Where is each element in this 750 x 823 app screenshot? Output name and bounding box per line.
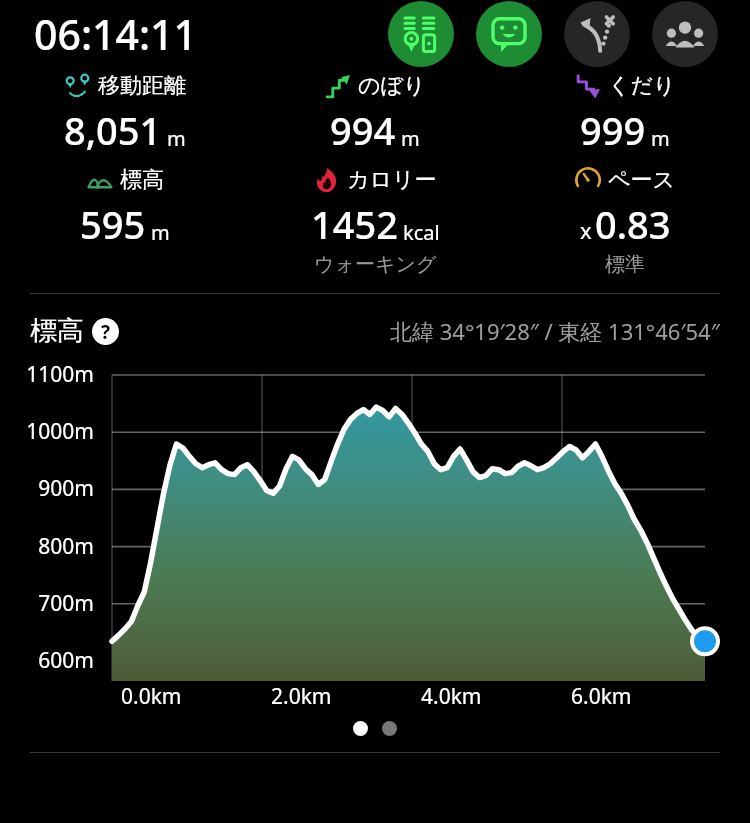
- staticText: 北緯 34°19′28″ / 東経 131°46′54″: [390, 316, 720, 346]
- staticText: 800m: [0, 532, 94, 561]
- button[interactable]: のぼり: [250, 72, 500, 156]
- staticText: 6.0km: [571, 682, 632, 711]
- button[interactable]: [382, 721, 397, 736]
- staticText: 1100m: [0, 360, 94, 389]
- staticText: 標高: [30, 314, 84, 348]
- staticText: m: [167, 125, 186, 152]
- button[interactable]: カロリー: [250, 166, 500, 277]
- staticText: 999: [580, 104, 646, 156]
- button[interactable]: 移動距離: [0, 72, 250, 156]
- staticText: 1452: [311, 198, 398, 250]
- staticText: 移動距離: [98, 72, 186, 100]
- staticText: 06:14:11: [34, 6, 198, 62]
- staticText: 標準: [605, 252, 645, 277]
- staticText: m: [151, 219, 170, 246]
- staticText: kcal: [403, 219, 440, 246]
- button[interactable]: 標高: [0, 166, 250, 250]
- button[interactable]: Members: [652, 1, 718, 67]
- staticText: くだり: [608, 72, 676, 100]
- staticText: 1000m: [0, 417, 94, 446]
- staticText: ペース: [608, 166, 676, 194]
- button[interactable]: Messages: [476, 1, 542, 67]
- staticText: 4.0km: [421, 682, 482, 711]
- staticText: 8,051: [64, 104, 162, 156]
- staticText: 2.0km: [271, 682, 332, 711]
- staticText: m: [401, 125, 420, 152]
- button[interactable]: ペース: [500, 166, 750, 277]
- staticText: x: [580, 215, 592, 245]
- staticText: 0.0km: [121, 682, 182, 711]
- staticText: 595: [80, 198, 146, 250]
- button[interactable]: Map layers: [388, 1, 454, 67]
- staticText: ?: [101, 319, 111, 345]
- staticText: 994: [330, 104, 396, 156]
- staticText: m: [651, 125, 670, 152]
- staticText: カロリー: [347, 166, 437, 194]
- button[interactable]: [353, 721, 368, 736]
- button[interactable]: Route: [564, 1, 630, 67]
- button[interactable]: くだり: [500, 72, 750, 156]
- staticText: 600m: [0, 646, 94, 675]
- staticText: ウォーキング: [314, 252, 437, 277]
- button[interactable]: Help: [92, 318, 119, 345]
- staticText: 標高: [120, 166, 164, 194]
- staticText: 700m: [0, 589, 94, 618]
- staticText: のぼり: [358, 72, 426, 100]
- staticText: 0.83: [595, 198, 671, 250]
- staticText: 900m: [0, 474, 94, 503]
